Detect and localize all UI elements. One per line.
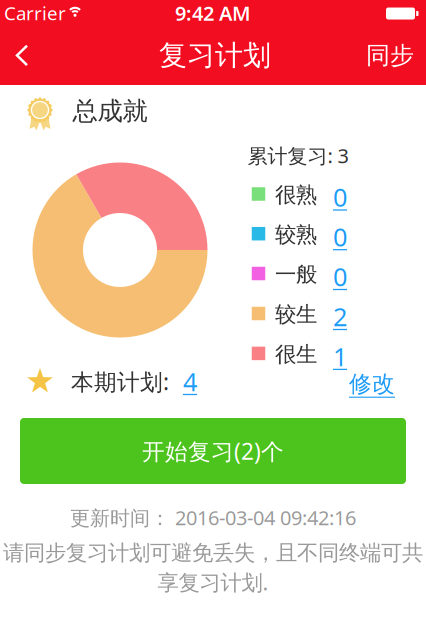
- button[interactable]: 0: [333, 260, 347, 293]
- staticText: 一般: [275, 261, 317, 288]
- button[interactable]: 2: [333, 300, 347, 333]
- button[interactable]: 修改: [349, 370, 395, 398]
- staticText: 0: [333, 180, 347, 214]
- staticText: 很熟: [275, 182, 317, 208]
- button[interactable]: 同步: [340, 26, 426, 84]
- staticText: 享复习计划.: [157, 568, 268, 596]
- staticText: 复习计划: [159, 38, 271, 73]
- staticText: 很生: [275, 341, 317, 367]
- staticText: 本期计划:: [71, 366, 169, 396]
- staticText: 2: [333, 300, 347, 333]
- button[interactable]: 0: [333, 220, 347, 253]
- staticText: 较熟: [275, 222, 317, 248]
- staticText: 总成就: [72, 95, 147, 126]
- staticText: 0: [333, 260, 347, 293]
- staticText: 1: [333, 340, 347, 373]
- button[interactable]: 4: [183, 365, 197, 398]
- staticText: 修改: [349, 370, 395, 398]
- button[interactable]: [0, 36, 44, 76]
- staticText: 0: [333, 220, 347, 253]
- button[interactable]: 1: [333, 340, 347, 373]
- staticText: 请同步复习计划可避免丢失，且不同终端可共: [3, 540, 423, 566]
- staticText: 同步: [366, 41, 414, 70]
- staticText: 更新时间： 2016-03-04 09:42:16: [70, 504, 356, 531]
- staticText: 9:42 AM: [175, 0, 251, 26]
- staticText: 较生: [275, 301, 317, 328]
- staticText: 累计复习: 3: [247, 142, 348, 169]
- button[interactable]: 开始复习(2)个: [20, 418, 406, 484]
- staticText: Carrier: [4, 1, 66, 25]
- staticText: 4: [183, 365, 197, 398]
- button[interactable]: 0: [333, 180, 347, 214]
- staticText: 开始复习(2)个: [142, 436, 284, 466]
